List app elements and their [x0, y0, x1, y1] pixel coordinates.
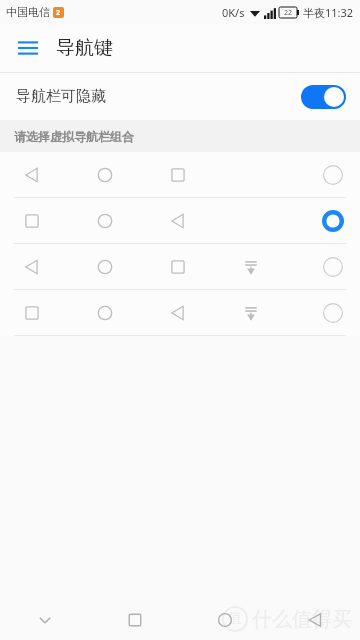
- staticText: 半夜11:32: [303, 5, 354, 20]
- button[interactable]: Recent apps: [90, 600, 180, 640]
- button[interactable]: Not selected: [0, 244, 360, 290]
- button[interactable]: Hide navigation bar: [0, 600, 90, 640]
- other: Not selected: [322, 256, 344, 278]
- staticText: 中国电信: [6, 5, 50, 19]
- staticText: 请选择虚拟导航栏组合: [14, 129, 134, 144]
- staticText: 什么值得买: [252, 607, 352, 632]
- button[interactable]: 导航栏可隐藏: [0, 73, 360, 120]
- other: Selected: [322, 210, 344, 232]
- other: Not selected: [322, 164, 344, 186]
- staticText: 22: [284, 8, 293, 18]
- staticText: 0K/s: [222, 5, 245, 20]
- other: Not selected: [322, 302, 344, 324]
- button[interactable]: Not selected: [0, 290, 360, 336]
- staticText: 导航键: [56, 36, 113, 60]
- button[interactable]: Back: [270, 600, 360, 640]
- staticText: 导航栏可隐藏: [16, 87, 106, 106]
- other: Navigation bar hideable toggle: [301, 85, 346, 109]
- button[interactable]: Home: [180, 600, 270, 640]
- staticText: 值: [228, 610, 242, 628]
- button[interactable]: Not selected: [0, 152, 360, 198]
- button[interactable]: Selected: [0, 198, 360, 244]
- button[interactable]: Menu: [8, 28, 48, 68]
- staticText: 2: [56, 8, 61, 18]
